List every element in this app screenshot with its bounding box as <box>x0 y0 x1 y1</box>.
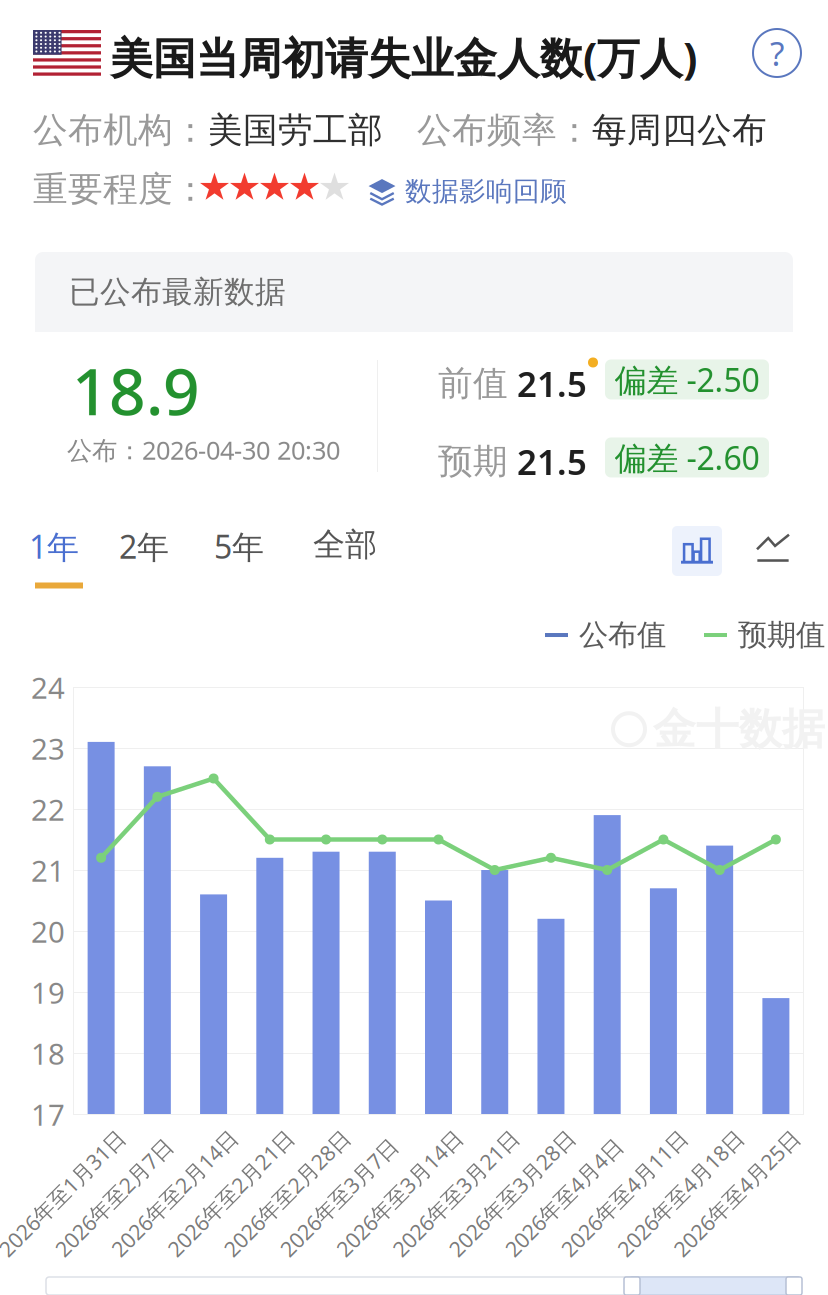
staticText: 偏差 -2.50 <box>614 358 759 401</box>
staticText: 金十数据 <box>653 703 825 755</box>
staticText: 数据影响回顾 <box>405 175 567 208</box>
staticText: 2026年至2月14日 <box>105 1243 273 1271</box>
staticText: 重要程度： <box>33 168 208 211</box>
staticText: 19 <box>31 973 65 1012</box>
staticText: 公布：2026-04-30 20:30 <box>67 433 340 467</box>
staticText: 2026年至2月21日 <box>161 1243 329 1271</box>
staticText: 2026年至4月18日 <box>611 1243 779 1271</box>
staticText: 公布频率： <box>417 109 592 152</box>
staticText: 22 <box>31 790 65 829</box>
staticText: 17 <box>31 1095 65 1134</box>
button[interactable]: 帮助 <box>753 29 801 77</box>
button[interactable]: 5年 <box>214 525 284 588</box>
button[interactable]: 柱状图 <box>672 526 722 576</box>
staticText: 21 <box>31 851 65 890</box>
staticText: 2026年至3月7日 <box>274 1243 430 1271</box>
staticText: 2026年至2月28日 <box>217 1243 385 1271</box>
staticText: 前值 <box>438 362 508 405</box>
staticText: 美国劳工部 <box>208 109 383 152</box>
staticText: 美国当周初请失业金人数(万人) <box>110 29 697 86</box>
staticText: 21.5 <box>508 438 587 484</box>
staticText: ? <box>770 31 784 75</box>
staticText: 23 <box>31 729 65 768</box>
staticText: 21.5 <box>508 360 587 406</box>
staticText: 已公布最新数据 <box>69 273 286 311</box>
staticText: 18.9 <box>72 348 200 433</box>
staticText: 偏差 -2.60 <box>614 436 759 479</box>
button[interactable]: 2年 <box>119 525 189 588</box>
staticText: 2026年至3月21日 <box>386 1243 554 1271</box>
staticText: 2026年至4月25日 <box>667 1243 828 1271</box>
staticText: 每周四公布 <box>592 109 767 152</box>
staticText: 公布机构： <box>33 109 208 152</box>
staticText: 2年 <box>119 525 169 567</box>
staticText: 2026年至4月4日 <box>498 1243 654 1271</box>
staticText: 2026年至3月14日 <box>330 1243 498 1271</box>
staticText: 公布值 <box>579 617 666 653</box>
button[interactable]: 数据影响回顾 <box>368 175 567 208</box>
button[interactable]: 1年 <box>29 525 99 588</box>
button[interactable]: 折线图 <box>748 526 798 576</box>
button[interactable]: 全部 <box>313 525 383 585</box>
staticText: 预期值 <box>738 617 825 653</box>
staticText: 24 <box>31 668 65 707</box>
staticText: 5年 <box>214 525 264 567</box>
staticText: 1年 <box>29 525 79 567</box>
staticText: 2026年至1月31日 <box>0 1243 160 1271</box>
staticText: 全部 <box>313 525 377 564</box>
staticText: 18 <box>31 1034 65 1073</box>
staticText: 2026年至4月11日 <box>555 1243 723 1271</box>
staticText: 2026年至2月7日 <box>49 1243 205 1271</box>
staticText: 20 <box>31 912 65 951</box>
staticText: 预期 <box>438 440 508 483</box>
staticText: 2026年至3月28日 <box>442 1243 610 1271</box>
